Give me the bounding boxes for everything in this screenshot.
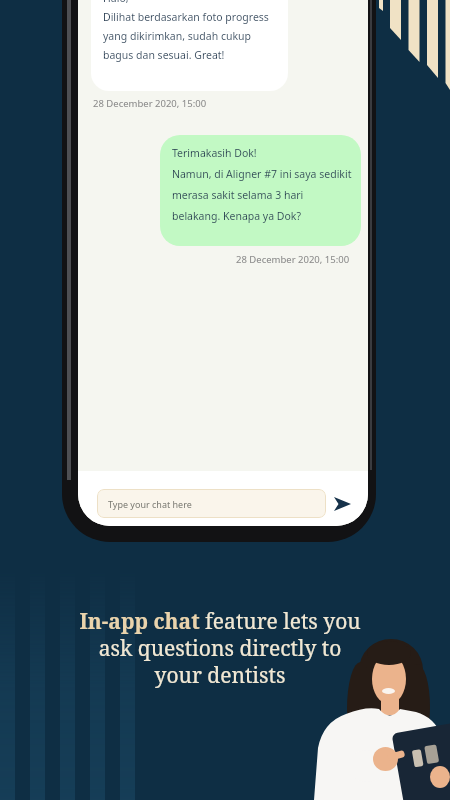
button[interactable]: Type your chat here: [97, 489, 326, 518]
staticText: In-app chat feature lets you ask questio…: [0, 607, 445, 689]
staticText: 28 December 2020, 15:00: [93, 97, 207, 110]
staticText: Halo, Dilihat berdasarkan foto progress …: [103, 0, 269, 62]
button[interactable]: [160, 135, 361, 246]
staticText: Terimakasih Dok! Namun, di Aligner #7 in…: [172, 146, 352, 223]
staticText: 28 December 2020, 15:00: [236, 253, 350, 266]
staticText: Type your chat here: [108, 498, 192, 510]
button[interactable]: [330, 493, 354, 515]
button[interactable]: [91, 0, 288, 91]
